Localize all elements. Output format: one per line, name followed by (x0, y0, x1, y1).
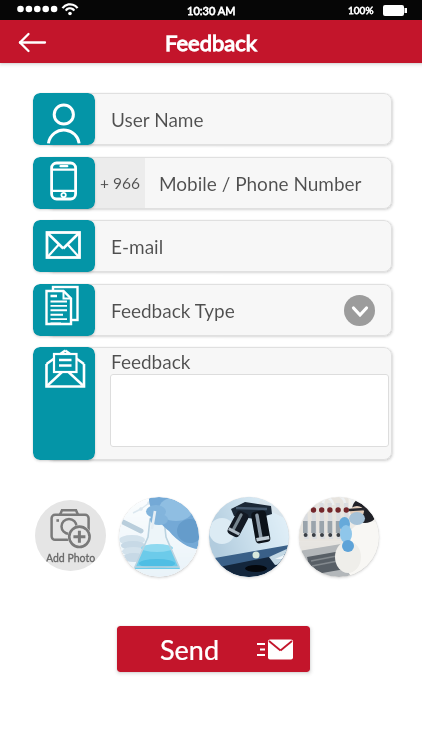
button[interactable]: User Name (46, 93, 392, 145)
staticText: Feedback Type (111, 299, 235, 322)
staticText: Feedback (165, 29, 257, 55)
button[interactable] (12, 22, 52, 62)
button[interactable]: E-mail (46, 220, 392, 272)
button[interactable]: Add Photo (35, 500, 106, 571)
staticText: + 966 (100, 174, 140, 193)
staticText: 10:30 AM (187, 4, 236, 17)
staticText: Feedback (111, 350, 191, 373)
button[interactable]: + 966 (46, 157, 392, 209)
button[interactable] (209, 497, 289, 577)
button[interactable]: Feedback (46, 347, 392, 460)
staticText: Mobile / Phone Number (159, 172, 362, 195)
button[interactable]: Feedback Type (46, 284, 392, 336)
staticText: Add Photo (46, 552, 96, 565)
staticText: E-mail (111, 235, 164, 258)
button[interactable] (344, 295, 375, 326)
button[interactable] (299, 497, 379, 577)
staticText: Send (160, 633, 220, 665)
button[interactable] (119, 497, 199, 577)
staticText: User Name (111, 108, 204, 131)
staticText: 100% (348, 4, 374, 16)
button[interactable]: Send (117, 626, 310, 672)
